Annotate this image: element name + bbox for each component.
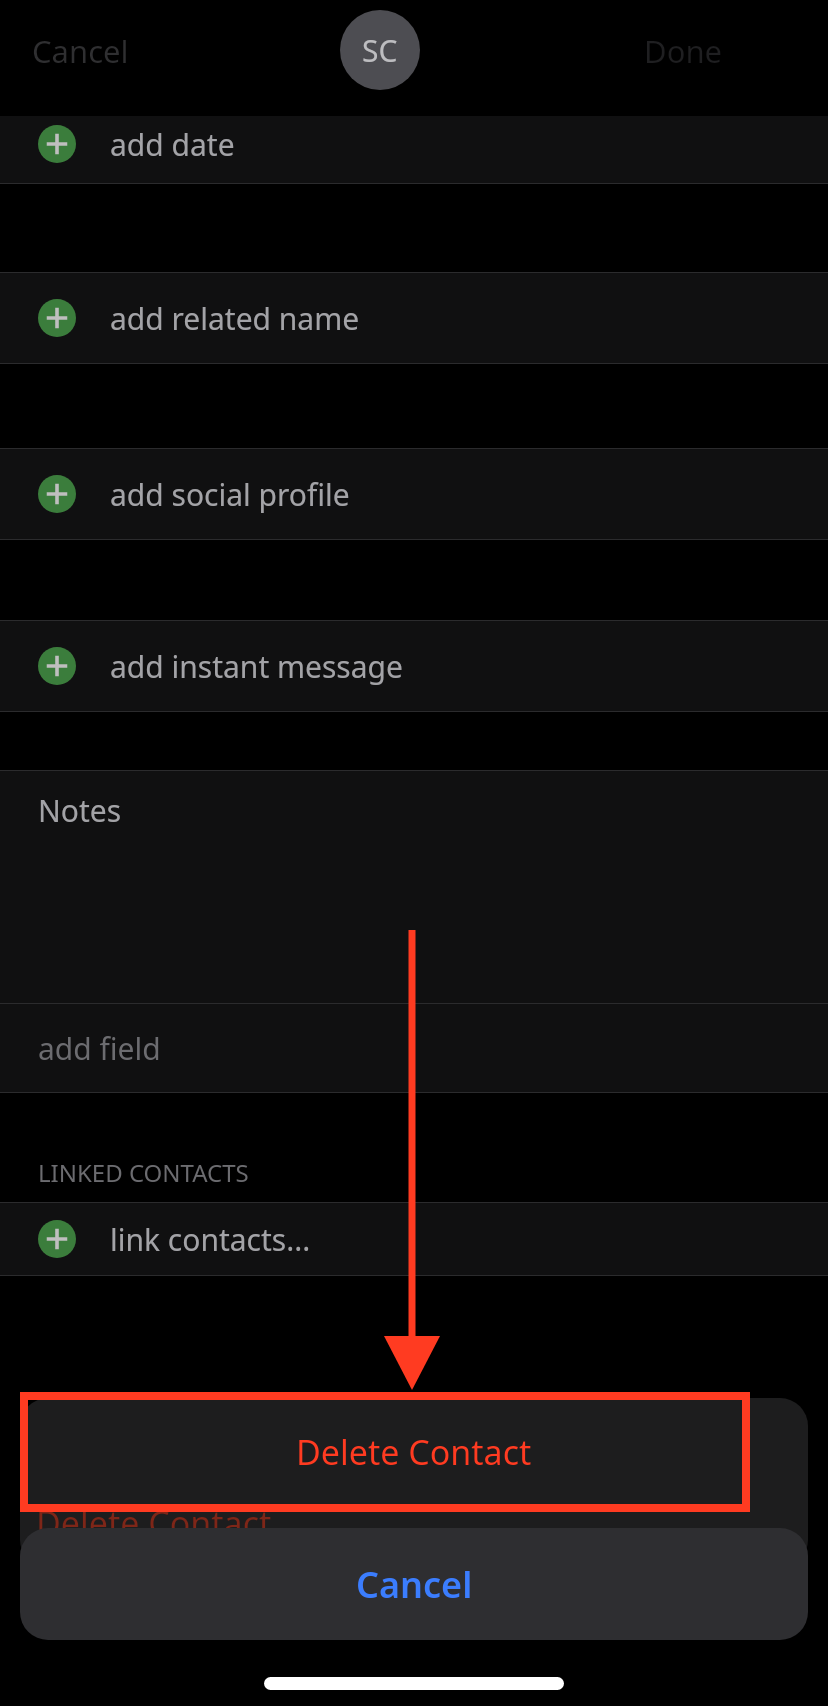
button[interactable]: add field xyxy=(0,1003,828,1093)
button[interactable]: Delete Contact xyxy=(20,1398,808,1506)
button[interactable]: Notes xyxy=(0,770,828,1020)
staticText: Done xyxy=(644,30,723,72)
staticText: Cancel xyxy=(356,1560,473,1609)
button[interactable]: add related name xyxy=(0,272,828,364)
staticText: Notes xyxy=(38,790,122,831)
button[interactable]: link contacts... xyxy=(0,1202,828,1276)
button[interactable]: add social profile xyxy=(0,448,828,540)
button[interactable]: Cancel xyxy=(22,24,139,78)
staticText: Delete Contact xyxy=(36,1500,272,1546)
staticText: add field xyxy=(38,1028,161,1069)
staticText: Cancel xyxy=(32,30,129,72)
button[interactable]: add date xyxy=(0,116,828,184)
button[interactable]: Done xyxy=(634,24,733,78)
staticText: add date xyxy=(110,124,235,165)
staticText: add related name xyxy=(110,298,360,339)
staticText: add instant message xyxy=(110,646,403,687)
staticText: Delete Contact xyxy=(296,1429,532,1475)
button[interactable]: add instant message xyxy=(0,620,828,712)
staticText: SC xyxy=(362,30,398,71)
button[interactable]: Cancel xyxy=(20,1528,808,1640)
staticText: LINKED CONTACTS xyxy=(38,1156,249,1189)
staticText: link contacts... xyxy=(110,1219,311,1260)
staticText: add social profile xyxy=(110,474,350,515)
button[interactable]: Contact photo xyxy=(340,10,420,90)
